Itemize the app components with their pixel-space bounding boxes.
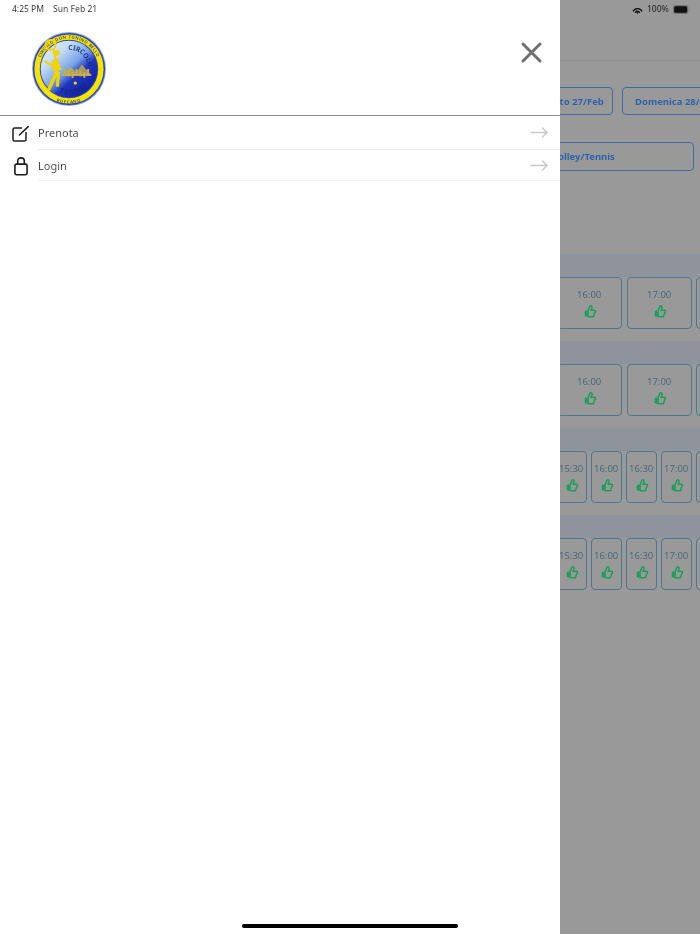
button[interactable]: Close menu [512, 33, 550, 71]
staticText: 17:00 [647, 288, 672, 301]
staticText: 16:00 [577, 375, 602, 388]
staticText: 100% [647, 3, 669, 15]
staticText: Domenica 28/Feb [635, 95, 700, 108]
staticText: Prenota [38, 125, 79, 140]
button[interactable]: 17:00 [661, 538, 692, 590]
staticText: 16:30 [629, 462, 654, 475]
button[interactable]: Domenica 28/Feb [622, 87, 700, 115]
button[interactable]: 15:30 [556, 538, 587, 590]
staticText: 16:00 [594, 549, 619, 562]
staticText: 4:25 PM [12, 3, 45, 15]
staticText: Login [38, 158, 67, 173]
button[interactable]: 17:00 [627, 277, 692, 329]
staticText: 15:30 [559, 462, 584, 475]
button[interactable]: 16:00 [591, 451, 622, 503]
staticText: Sabato 27/Feb [537, 95, 604, 108]
button[interactable]: Prenota [0, 116, 560, 149]
button[interactable]: 16:30 [626, 451, 657, 503]
staticText: Volley/Tennis [552, 150, 615, 163]
button[interactable]: 17:00 [627, 364, 692, 416]
button[interactable]: 15:30 [556, 451, 587, 503]
button[interactable]: 16:00 [591, 538, 622, 590]
staticText: 17:00 [647, 375, 672, 388]
button[interactable]: 17:30 [696, 451, 700, 503]
button[interactable]: 17:30 [696, 538, 700, 590]
button[interactable]: 18:00 [696, 364, 700, 416]
button[interactable]: 18:00 [696, 277, 700, 329]
staticText: 15:30 [559, 549, 584, 562]
staticText: 16:00 [577, 288, 602, 301]
button[interactable]: Sabato 27/Feb [527, 87, 613, 115]
button[interactable]: 16:30 [626, 538, 657, 590]
button[interactable]: 16:00 [557, 364, 622, 416]
button[interactable]: 17:00 [661, 451, 692, 503]
staticText: 17:00 [664, 549, 689, 562]
staticText: 16:30 [629, 549, 654, 562]
staticText: 17:00 [664, 462, 689, 475]
staticText: 16:00 [594, 462, 619, 475]
staticText: Sun Feb 21 [53, 3, 98, 15]
button[interactable]: 16:00 [557, 277, 622, 329]
button[interactable]: Login [0, 150, 560, 180]
button[interactable]: Volley/Tennis [370, 142, 694, 171]
